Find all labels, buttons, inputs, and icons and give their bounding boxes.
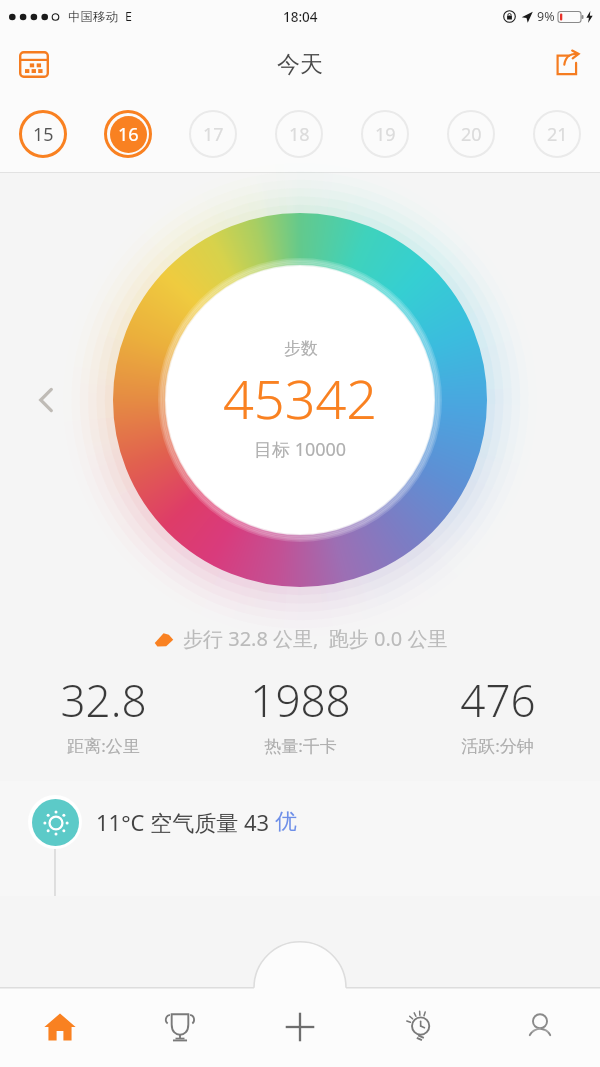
staticText: 0579cn — [490, 1018, 594, 1059]
button[interactable]: 17 — [170, 95, 256, 172]
staticText: 15 — [33, 122, 54, 147]
staticText: 16 — [118, 122, 139, 147]
button[interactable]: Achievements — [120, 987, 240, 1067]
staticText: 步数 — [284, 338, 318, 359]
button[interactable]: 21 — [514, 95, 600, 172]
staticText: 18:04 — [283, 8, 318, 26]
staticText: 9% — [537, 8, 555, 25]
staticText: 21 — [547, 122, 568, 147]
button[interactable]: 15 — [0, 95, 85, 172]
button[interactable]: 32.8 — [4, 670, 202, 757]
staticText: 距离:公里 — [67, 734, 140, 757]
staticText: 中国移动 — [68, 9, 118, 25]
staticText: 11°C 空气质量 43 — [96, 807, 275, 837]
staticText: 热量:千卡 — [264, 734, 337, 757]
button[interactable]: 11°C 空气质量 43 — [0, 781, 600, 896]
button[interactable]: 476 — [399, 670, 596, 757]
button[interactable]: 19 — [342, 95, 428, 172]
staticText: 优 — [275, 808, 297, 836]
staticText: 20 — [461, 122, 482, 147]
button[interactable]: Home — [0, 987, 120, 1067]
button[interactable]: 20 — [428, 95, 514, 172]
staticText: 32.8 — [60, 670, 147, 730]
staticText: 476 — [460, 670, 536, 730]
staticText: 18 — [289, 122, 310, 147]
staticText: 17 — [203, 122, 224, 147]
staticText: 19 — [375, 122, 396, 147]
staticText: 45342 — [223, 361, 378, 435]
staticText: 活跃:分钟 — [461, 734, 534, 757]
staticText: 步行 32.8 公里, 跑步 0.0 公里 — [183, 625, 448, 652]
staticText: 1988 — [250, 670, 351, 730]
staticText: E — [125, 8, 132, 25]
button[interactable]: Discover — [360, 987, 480, 1067]
staticText: 今天 — [277, 50, 323, 79]
button[interactable]: 16 — [85, 95, 170, 172]
button[interactable]: Calendar — [10, 40, 58, 88]
button[interactable]: Profile — [480, 987, 600, 1067]
staticText: 目标 10000 — [254, 437, 347, 462]
button[interactable]: Previous — [26, 380, 66, 420]
button[interactable]: Add — [240, 987, 360, 1067]
button[interactable]: 18 — [256, 95, 342, 172]
button[interactable]: Share — [542, 40, 590, 88]
button[interactable]: 1988 — [202, 670, 399, 757]
